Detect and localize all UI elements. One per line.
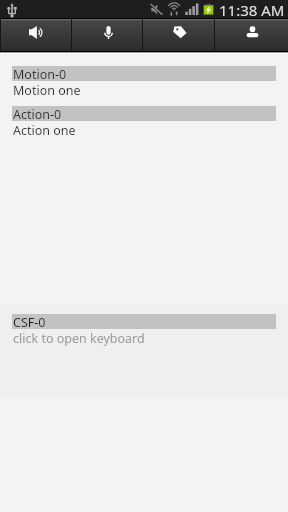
staticText: 11:38 AM: [219, 0, 285, 18]
button[interactable]: Motion-0: [0, 66, 288, 99]
button[interactable]: Tag: [144, 19, 216, 51]
staticText: CSF-0: [13, 314, 46, 329]
staticText: click to open keyboard: [13, 330, 145, 347]
button[interactable]: Volume: [0, 19, 72, 51]
button[interactable]: CSF-0: [0, 314, 288, 347]
staticText: Action-0: [13, 106, 62, 121]
button[interactable]: Microphone: [72, 19, 144, 51]
staticText: Action one: [13, 122, 76, 139]
staticText: Motion one: [13, 82, 81, 99]
button[interactable]: Action-0: [0, 106, 288, 139]
staticText: Motion-0: [13, 66, 67, 81]
button[interactable]: Contact: [216, 19, 288, 51]
other: USB connected: [7, 3, 17, 17]
